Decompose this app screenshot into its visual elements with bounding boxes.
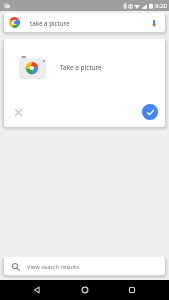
- staticText: take a picture: [30, 19, 70, 27]
- button[interactable]: Voice search: [148, 17, 160, 29]
- button[interactable]: View search results: [4, 257, 165, 275]
- button[interactable]: Home: [56, 280, 113, 300]
- button[interactable]: Confirm: [142, 104, 158, 120]
- button[interactable]: Recents: [104, 280, 160, 300]
- staticText: Take a picture: [60, 63, 102, 72]
- button[interactable]: take a picture: [4, 13, 165, 32]
- button[interactable]: Back: [9, 280, 65, 300]
- staticText: 9:20: [155, 2, 167, 10]
- button[interactable]: Dismiss: [11, 105, 26, 120]
- button[interactable]: Take a picture: [4, 39, 165, 96]
- staticText: View search results: [27, 263, 79, 271]
